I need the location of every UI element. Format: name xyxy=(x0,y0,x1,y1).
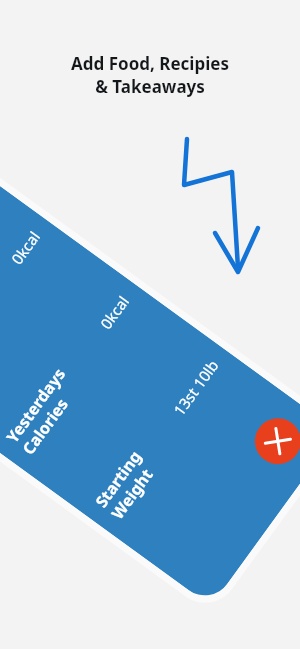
button[interactable]: Yesterdays Calories xyxy=(0,204,76,410)
staticText: 0kcal xyxy=(7,226,44,268)
staticText: 13st 10lb xyxy=(169,356,223,419)
staticText: 0kcal xyxy=(96,291,133,333)
staticText: Yesterdays Calories xyxy=(1,364,85,458)
staticText: Add Food, Recipies & Takeaways xyxy=(71,52,229,98)
button[interactable]: Starting Weight xyxy=(67,333,254,539)
button[interactable]: Close xyxy=(246,409,300,473)
staticText: Starting Weight xyxy=(90,446,161,523)
button[interactable]: Yesterdays Calories xyxy=(0,268,165,475)
